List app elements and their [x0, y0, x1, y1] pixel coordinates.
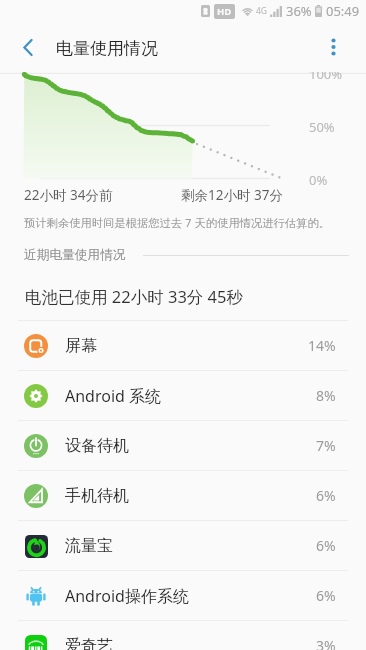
staticText: 4G	[256, 5, 268, 17]
button[interactable]: 设备待机	[0, 421, 366, 470]
staticText: 6%	[316, 486, 336, 505]
staticText: 屏幕	[65, 336, 97, 356]
button[interactable]: Android操作系统	[0, 571, 366, 620]
button[interactable]: 爱奇艺	[0, 621, 366, 650]
staticText: 8%	[316, 386, 336, 405]
staticText: 0%	[309, 171, 328, 185]
staticText: 3%	[316, 636, 336, 650]
staticText: 剩余12小时 37分	[181, 186, 283, 204]
button[interactable]: Back	[5, 24, 51, 70]
staticText: 36%	[286, 2, 312, 20]
staticText: 电量使用情况	[56, 38, 158, 59]
staticText: 流量宝	[65, 536, 113, 556]
staticText: 14%	[308, 336, 336, 355]
staticText: 手机待机	[65, 486, 129, 506]
staticText: 预计剩余使用时间是根据您过去 7 天的使用情况进行估算的。	[24, 215, 331, 230]
staticText: 22小时 34分前	[24, 186, 113, 204]
staticText: 100%	[309, 72, 343, 83]
staticText: 近期电量使用情况	[24, 247, 126, 263]
button[interactable]: Android 系统	[0, 371, 366, 420]
staticText: 电池已使用 22小时 33分 45秒	[25, 285, 243, 308]
staticText: 6%	[316, 586, 336, 605]
button[interactable]: 屏幕	[0, 321, 366, 370]
staticText: Android操作系统	[65, 585, 189, 607]
staticText: 6%	[316, 536, 336, 555]
staticText: 设备待机	[65, 436, 129, 456]
staticText: 7%	[316, 436, 336, 455]
staticText: 05:49	[326, 2, 360, 20]
staticText: 爱奇艺	[65, 636, 113, 650]
button[interactable]: 流量宝	[0, 521, 366, 570]
button[interactable]: More options	[310, 24, 356, 70]
button[interactable]: 手机待机	[0, 471, 366, 520]
staticText: 50%	[309, 118, 335, 136]
staticText: Android 系统	[65, 385, 162, 407]
staticText: HD	[217, 5, 232, 18]
